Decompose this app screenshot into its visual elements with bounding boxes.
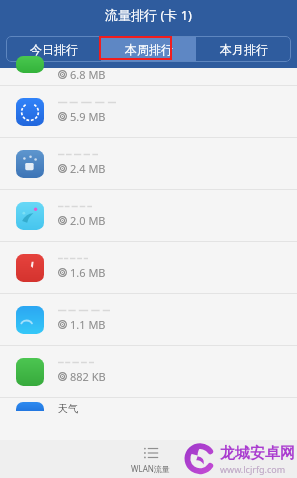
button[interactable]: 本周排行	[101, 36, 196, 62]
button[interactable]: 2.0 MB	[0, 190, 297, 242]
button[interactable]: 1.6 MB	[0, 242, 297, 294]
button[interactable]: 今日排行	[6, 36, 101, 62]
staticText: 今日排行	[30, 42, 78, 57]
staticText: 1.1 MB	[70, 317, 106, 332]
staticText: 2.0 MB	[70, 213, 106, 228]
staticText: WLAN流量	[131, 463, 170, 474]
button[interactable]: 1.1 MB	[0, 294, 297, 346]
button[interactable]: 本月排行	[196, 36, 291, 62]
staticText: 龙城安卓网	[220, 444, 295, 463]
button[interactable]: WLAN 流量列表	[131, 445, 170, 474]
staticText: 1.6 MB	[70, 265, 106, 280]
button[interactable]: 882 KB	[0, 346, 297, 398]
staticText: 流量排行 (卡 1)	[105, 6, 192, 24]
other: WLAN 流量列表	[143, 445, 159, 461]
staticText: 5.9 MB	[70, 109, 106, 124]
button[interactable]: 5.9 MB	[0, 86, 297, 138]
staticText: 天气	[58, 402, 78, 415]
button[interactable]: 2.4 MB	[0, 138, 297, 190]
staticText: 2.4 MB	[70, 161, 106, 176]
staticText: 本月排行	[220, 42, 268, 57]
staticText: 882 KB	[70, 369, 106, 384]
staticText: www.lcjrfg.com	[220, 463, 286, 475]
staticText: 6.8 MB	[70, 67, 106, 82]
staticText: 本周排行	[125, 42, 173, 57]
